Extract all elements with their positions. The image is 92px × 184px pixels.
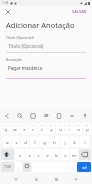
staticText: w — [13, 127, 17, 133]
button[interactable]: s — [12, 136, 20, 147]
button[interactable]: Pagar mecânico — [6, 65, 86, 71]
staticText: Adicionar Anotação — [6, 20, 75, 30]
staticText: 8 — [68, 123, 70, 126]
staticText: Anotação — [6, 57, 22, 62]
staticText: 6 — [50, 123, 52, 126]
button[interactable]: c — [34, 149, 42, 160]
staticText: c — [37, 153, 40, 159]
button[interactable]: Ocultar teclado — [72, 175, 80, 183]
button[interactable]: Adesivos — [29, 112, 37, 120]
button[interactable]: 9 — [74, 123, 82, 134]
button[interactable]: v — [43, 149, 51, 160]
button[interactable]: Emoji — [23, 162, 31, 172]
staticText: a — [6, 140, 9, 146]
staticText: Título (Opcional) — [8, 43, 44, 49]
staticText: j — [64, 140, 66, 146]
staticText: z — [19, 153, 21, 159]
button[interactable]: , — [15, 162, 22, 172]
staticText: r — [32, 127, 34, 133]
staticText: 9 — [77, 123, 79, 126]
staticText: h — [53, 140, 56, 146]
staticText: 4 — [32, 123, 34, 126]
button[interactable]: Fechar — [4, 8, 12, 16]
button[interactable]: g — [40, 136, 49, 147]
staticText: 3 — [23, 123, 25, 126]
staticText: , — [18, 165, 20, 171]
staticText: m — [72, 153, 76, 159]
staticText: n — [64, 153, 67, 159]
staticText: 7 — [59, 123, 61, 126]
staticText: x — [28, 153, 31, 159]
button[interactable]: 8 — [65, 123, 73, 134]
staticText: y — [50, 127, 53, 133]
button[interactable]: Recentes — [52, 175, 60, 183]
button[interactable]: 7 — [56, 123, 64, 134]
button[interactable]: Título (Opcional) — [6, 43, 86, 49]
button[interactable]: 2 — [11, 123, 19, 134]
button[interactable]: 4 — [29, 123, 37, 134]
staticText: s — [15, 140, 18, 146]
button[interactable]: GIF — [42, 112, 50, 120]
button[interactable]: Apagar — [79, 149, 91, 160]
button[interactable]: n — [61, 149, 69, 160]
button[interactable]: 3 — [20, 123, 28, 134]
button[interactable]: Pesquisar — [16, 112, 24, 120]
staticText: . — [72, 165, 74, 171]
staticText: 0 — [86, 123, 88, 126]
button[interactable]: a — [3, 136, 11, 147]
staticText: g — [43, 140, 46, 146]
staticText: 5 — [41, 123, 43, 126]
button[interactable]: b — [52, 149, 60, 160]
button[interactable]: k — [70, 136, 79, 147]
button[interactable]: z — [15, 149, 24, 160]
button[interactable]: Voltar — [3, 112, 11, 120]
button[interactable]: Configurações — [68, 112, 76, 120]
button[interactable]: x — [25, 149, 33, 160]
button[interactable]: 1 — [1, 123, 10, 134]
button[interactable]: m — [70, 149, 78, 160]
button[interactable]: h — [50, 136, 59, 147]
button[interactable]: Área de transferência — [55, 112, 63, 120]
button[interactable]: f — [30, 136, 39, 147]
staticText: v — [46, 153, 49, 159]
staticText: p — [86, 127, 89, 133]
button[interactable]: Enter — [77, 162, 91, 172]
button[interactable]: 5 — [38, 123, 46, 134]
staticText: l — [84, 140, 86, 146]
button[interactable]: 0 — [83, 123, 91, 134]
staticText: 1:33 — [2, 1, 9, 5]
button[interactable]: Início — [32, 175, 40, 183]
staticText: e — [23, 127, 26, 133]
button[interactable]: Shift — [1, 149, 14, 160]
staticText: Pagar mecânico — [8, 65, 43, 71]
staticText: q — [4, 127, 7, 133]
button[interactable]: Voltar — [12, 175, 20, 183]
button[interactable]: SALVAR — [70, 8, 89, 15]
staticText: 1 — [5, 123, 7, 126]
button[interactable]: Microfone — [81, 112, 89, 120]
staticText: d — [24, 140, 27, 146]
button[interactable]: j — [60, 136, 69, 147]
staticText: t — [41, 127, 43, 133]
staticText: i — [68, 127, 70, 133]
button[interactable]: d — [21, 136, 29, 147]
staticText: b — [55, 153, 58, 159]
staticText: k — [73, 140, 76, 146]
staticText: 2 — [14, 123, 16, 126]
button[interactable]: l — [80, 136, 89, 147]
button[interactable]: 6 — [47, 123, 55, 134]
button[interactable]: ?123 — [1, 162, 14, 172]
staticText: f — [34, 140, 36, 146]
staticText: ?123 — [4, 165, 11, 169]
staticText: SALVAR — [72, 9, 87, 14]
staticText: o — [77, 127, 80, 133]
staticText: Título (Opcional) — [6, 35, 34, 40]
staticText: GIF — [44, 114, 49, 118]
staticText: u — [59, 127, 62, 133]
